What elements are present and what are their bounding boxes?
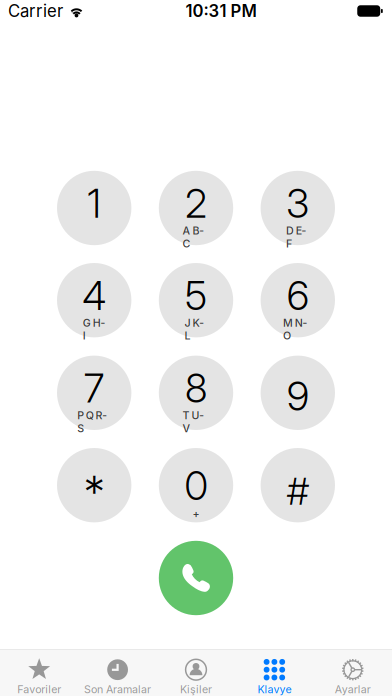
staticText: 10:31 PM <box>185 1 256 21</box>
staticText: ABC <box>183 224 209 237</box>
button[interactable]: Kişiler <box>157 649 235 696</box>
staticText: Klavye <box>257 683 291 696</box>
staticText: 9 <box>287 372 309 420</box>
button[interactable]: Klavye <box>235 649 314 696</box>
staticText: MNO <box>283 316 313 329</box>
staticText: PQRS <box>77 409 111 422</box>
button[interactable]: Son Aramalar <box>78 649 157 696</box>
button[interactable]: 4 <box>57 263 131 337</box>
staticText: 8 <box>185 364 207 412</box>
staticText: 2 <box>185 180 207 227</box>
button[interactable]: 3 <box>261 171 335 245</box>
button[interactable]: Call <box>159 541 233 615</box>
button[interactable]: 5 <box>159 263 233 337</box>
staticText: Son Aramalar <box>84 683 151 696</box>
staticText: 6 <box>287 272 309 319</box>
button[interactable]: * <box>57 448 131 522</box>
button[interactable]: 6 <box>261 263 335 337</box>
staticText: Ayarlar <box>335 683 371 696</box>
staticText: # <box>287 469 309 514</box>
button[interactable]: # <box>261 448 335 522</box>
staticText: + <box>192 508 199 521</box>
staticText: 7 <box>84 364 105 412</box>
button[interactable]: 1 <box>57 171 131 245</box>
button[interactable]: Ayarlar <box>314 649 392 696</box>
staticText: JKL <box>185 316 207 329</box>
staticText: TUV <box>183 409 209 422</box>
button[interactable]: 9 <box>261 356 335 430</box>
button[interactable]: 7 <box>57 356 131 430</box>
button[interactable]: Favoriler <box>0 649 78 696</box>
staticText: 4 <box>82 272 106 319</box>
staticText: 0 <box>184 462 207 510</box>
staticText: Favoriler <box>17 683 61 696</box>
staticText: 3 <box>286 180 309 227</box>
staticText: DEF <box>286 224 310 237</box>
staticText: 1 <box>87 180 101 227</box>
staticText: * <box>83 465 105 518</box>
staticText: Kişiler <box>180 683 212 696</box>
button[interactable]: 0 <box>159 448 233 522</box>
button[interactable]: 2 <box>159 171 233 245</box>
staticText: Carrier <box>8 1 63 21</box>
staticText: 5 <box>185 272 207 319</box>
staticText: GHI <box>83 316 106 329</box>
button[interactable]: 8 <box>159 356 233 430</box>
